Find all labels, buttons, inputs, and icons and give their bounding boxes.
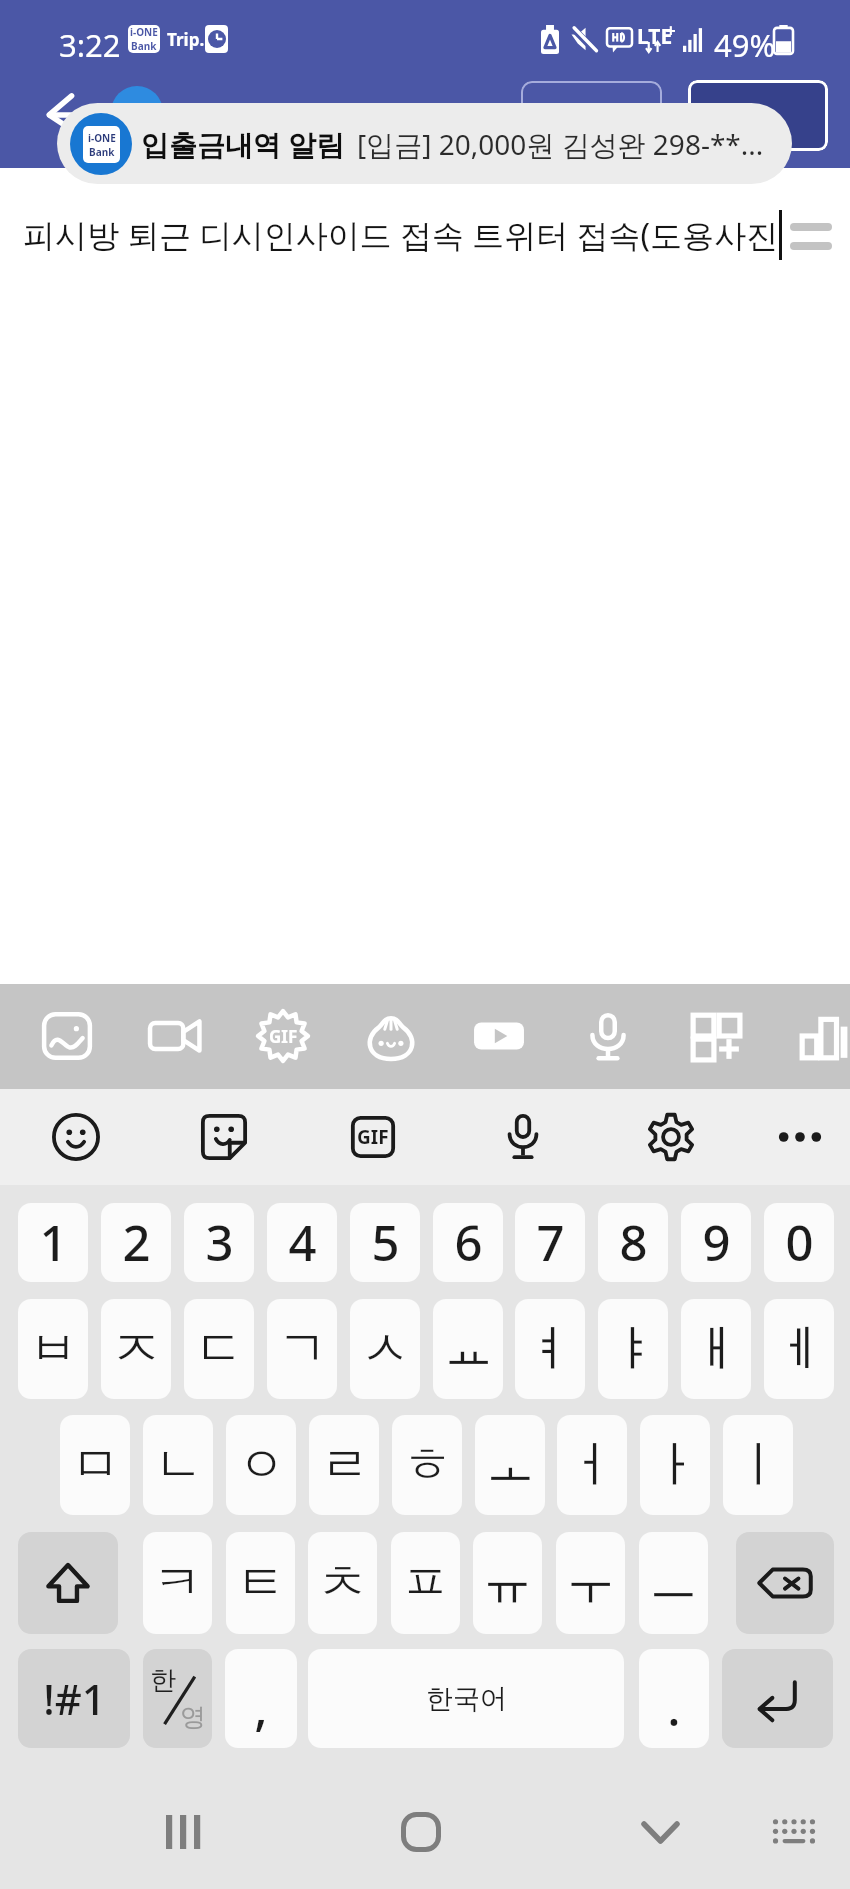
staticText: Bank [89, 145, 115, 159]
button[interactable]: Hide keyboard [615, 1787, 705, 1877]
staticText: 3 [205, 1209, 234, 1276]
staticText: 입출금내역 알림 [141, 125, 345, 163]
button[interactable]: ㅍ [391, 1532, 460, 1634]
staticText: 9 [702, 1209, 731, 1276]
staticText: , [254, 1674, 268, 1741]
button[interactable]: 3 [184, 1203, 254, 1282]
staticText: ㅐ [692, 1318, 741, 1380]
button[interactable]: youtube [457, 994, 541, 1078]
button[interactable]: ㅔ [764, 1299, 834, 1399]
button[interactable]: ㅊ [308, 1532, 377, 1634]
button[interactable]: emoji [38, 1099, 114, 1175]
staticText: GIF [357, 1124, 389, 1150]
staticText: ㅅ [361, 1318, 410, 1380]
staticText: 한 [150, 1664, 176, 1697]
staticText: Bank [131, 39, 157, 53]
button[interactable]: 4 [267, 1203, 337, 1282]
button[interactable]: more [762, 1099, 838, 1175]
button[interactable]: ㅁ [60, 1415, 130, 1515]
staticText: ㄷ [195, 1318, 244, 1380]
button[interactable]: ㅓ [557, 1415, 627, 1515]
staticText: 6 [454, 1209, 483, 1276]
button[interactable]: ㅌ [226, 1532, 295, 1634]
staticText: ㅗ [486, 1434, 535, 1496]
button[interactable]: gif [241, 994, 325, 1078]
button[interactable]: ㅡ [639, 1532, 708, 1634]
button[interactable]: . [639, 1649, 709, 1748]
staticText: ㅍ [401, 1552, 450, 1614]
button[interactable]: !#1 [18, 1649, 130, 1748]
button[interactable]: 6 [433, 1203, 503, 1282]
button[interactable]: ㅜ [556, 1532, 625, 1634]
button[interactable]: Enter [722, 1649, 833, 1748]
button[interactable]: 9 [681, 1203, 751, 1282]
button[interactable]: 0 [764, 1203, 834, 1282]
staticText: ㅋ [153, 1552, 202, 1614]
button[interactable]: ㅅ [350, 1299, 420, 1399]
button[interactable] [521, 81, 662, 155]
button[interactable]: image [25, 994, 109, 1078]
button[interactable]: grid [674, 994, 758, 1078]
button[interactable]: ㅕ [515, 1299, 585, 1399]
button[interactable] [688, 80, 828, 151]
staticText: . [667, 1674, 681, 1741]
button[interactable]: sticker [186, 1099, 262, 1175]
button[interactable]: ㄱ [267, 1299, 337, 1399]
button[interactable]: 8 [598, 1203, 668, 1282]
button[interactable]: Backspace [736, 1532, 834, 1634]
button[interactable]: video [133, 994, 217, 1078]
button[interactable]: ㅛ [433, 1299, 503, 1399]
button[interactable]: 5 [350, 1203, 420, 1282]
button[interactable]: ㅏ [640, 1415, 710, 1515]
button[interactable]: ㅗ [475, 1415, 545, 1515]
staticText: !#1 [43, 1670, 106, 1727]
staticText: 5 [371, 1209, 400, 1276]
button[interactable]: ㅠ [473, 1532, 542, 1634]
button[interactable]: ㅣ [723, 1415, 793, 1515]
staticText: ㅇ [237, 1434, 286, 1496]
staticText: ㅕ [526, 1318, 575, 1380]
button[interactable]: chart [782, 994, 850, 1078]
button[interactable]: settings [633, 1099, 709, 1175]
button[interactable]: ㅈ [101, 1299, 171, 1399]
button[interactable]: 한국어 [308, 1649, 624, 1748]
button[interactable]: ㅋ [143, 1532, 212, 1634]
button[interactable]: Shift [18, 1532, 118, 1634]
staticText: i-ONE [88, 131, 116, 145]
button[interactable]: ㅇ [226, 1415, 296, 1515]
staticText: ㅏ [651, 1434, 700, 1496]
button[interactable]: ㄹ [309, 1415, 379, 1515]
button[interactable]: ㅎ [392, 1415, 462, 1515]
button[interactable]: More options [782, 215, 840, 257]
button[interactable]: Back [38, 88, 94, 144]
button[interactable]: mic [566, 994, 650, 1078]
staticText: 3:22 [59, 24, 121, 66]
staticText: Trip. [167, 28, 205, 51]
staticText: 2 [122, 1209, 151, 1276]
button[interactable]: 7 [515, 1203, 585, 1282]
staticText: ㅎ [403, 1434, 452, 1496]
button[interactable]: 1 [18, 1203, 88, 1282]
button[interactable]: ㄷ [184, 1299, 254, 1399]
staticText: ㅌ [236, 1552, 285, 1614]
staticText: ㅑ [609, 1318, 658, 1380]
button[interactable]: , [225, 1649, 297, 1748]
button[interactable]: Recents [139, 1787, 229, 1877]
button[interactable]: ㅑ [598, 1299, 668, 1399]
button[interactable]: Change keyboard [749, 1787, 839, 1877]
button[interactable]: 2 [101, 1203, 171, 1282]
staticText: GIF [269, 1025, 298, 1048]
button[interactable]: ㄴ [143, 1415, 213, 1515]
button[interactable]: ㅂ [18, 1299, 88, 1399]
button[interactable]: Home [376, 1787, 466, 1877]
button[interactable]: Korean / English [143, 1649, 212, 1748]
button[interactable]: gif2 [335, 1099, 411, 1175]
button[interactable]: mic2 [485, 1099, 561, 1175]
button[interactable]: bun [349, 994, 433, 1078]
staticText: ㄴ [154, 1434, 203, 1496]
button[interactable]: ㅐ [681, 1299, 751, 1399]
staticText: ㅣ [734, 1434, 783, 1496]
button[interactable]: i-ONE [57, 103, 792, 184]
staticText: 한국어 [426, 1682, 507, 1716]
staticText: [입금] 20,000원 김성완 298-**... [357, 125, 764, 163]
